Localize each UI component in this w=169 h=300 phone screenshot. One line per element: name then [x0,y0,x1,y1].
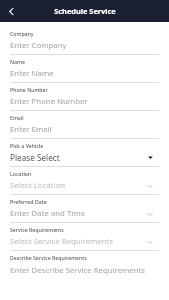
staticText: Select Location [10,180,147,191]
staticText: Select Service Requirements [10,236,147,247]
button[interactable]: Pick a Vehicle [10,139,159,167]
button[interactable]: Service Requirements [10,223,159,251]
staticText: Enter Date and Time [10,208,147,219]
staticText: Enter Name [10,68,159,79]
staticText: Name [10,58,25,65]
staticText: Company [10,30,34,37]
button[interactable]: Location [10,167,159,195]
staticText: Preferred Date [10,198,47,205]
button[interactable]: Email [10,111,159,139]
button[interactable]: Name [10,55,159,83]
staticText: Phone Number [10,86,48,93]
staticText: Pick a Vehicle [10,142,44,149]
button[interactable]: Phone Number [10,83,159,111]
staticText: Email [10,114,24,121]
staticText: Enter Phone Number [10,96,159,107]
button[interactable]: Company [10,27,159,55]
button[interactable]: Describe Service Requirements [10,251,159,279]
staticText: Describe Service Requirements [10,254,87,261]
staticText: Schedule Service [54,6,116,16]
staticText: Enter Company [10,40,159,51]
staticText: Enter Describe Service Requirements [10,265,159,276]
staticText: Location [10,170,32,177]
staticText: Service Requirements [10,226,64,233]
staticText: Enter Email [10,124,159,135]
button[interactable]: Preferred Date [10,195,159,223]
button[interactable]: Back [0,0,22,22]
staticText: Please Select [10,152,148,163]
